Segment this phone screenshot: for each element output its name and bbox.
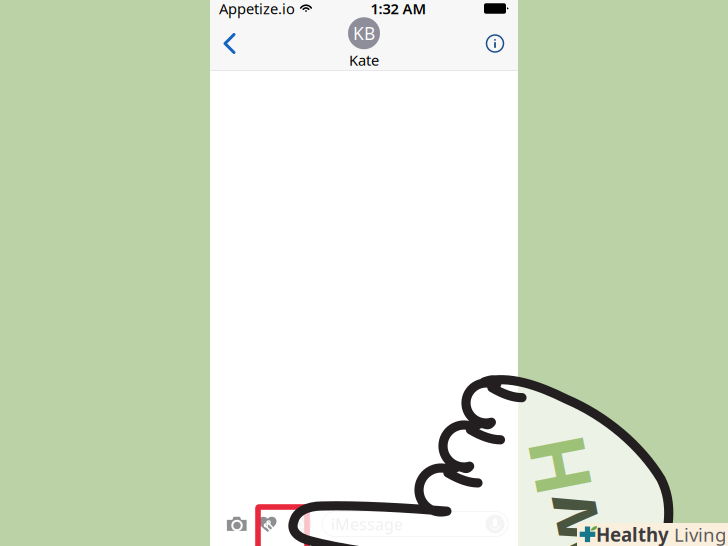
button[interactable]: App Store (288, 515, 312, 533)
staticText: Appetize.io (219, 0, 295, 18)
button[interactable]: Camera (226, 515, 248, 532)
staticText: w (501, 447, 567, 546)
button[interactable]: Details (485, 33, 505, 53)
staticText: 1:32 AM (370, 0, 426, 18)
button[interactable]: Digital Touch (258, 514, 278, 533)
button[interactable]: Back (223, 32, 236, 54)
staticText: KB (353, 22, 375, 45)
staticText: Living (669, 522, 726, 546)
staticText: H (567, 447, 626, 546)
staticText: Healthy (596, 522, 669, 546)
staticText: Kate (349, 50, 379, 70)
staticText: iMessage (331, 513, 403, 535)
